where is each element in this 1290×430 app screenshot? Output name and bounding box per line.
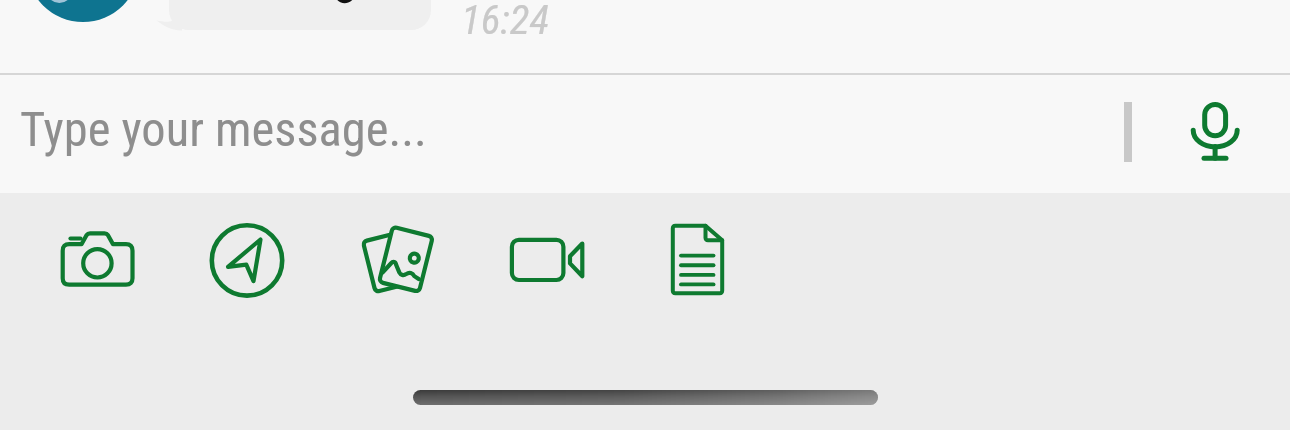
button[interactable]: Camera	[52, 218, 142, 298]
button[interactable]: Record voice message	[1175, 75, 1255, 193]
button[interactable]: Location	[205, 218, 295, 298]
button[interactable]: Document	[663, 218, 753, 298]
button[interactable]: Video	[503, 218, 593, 298]
button[interactable]: Gallery	[353, 218, 443, 298]
button[interactable]: Type your message...	[20, 101, 427, 158]
staticText: 16:24	[461, 0, 550, 44]
